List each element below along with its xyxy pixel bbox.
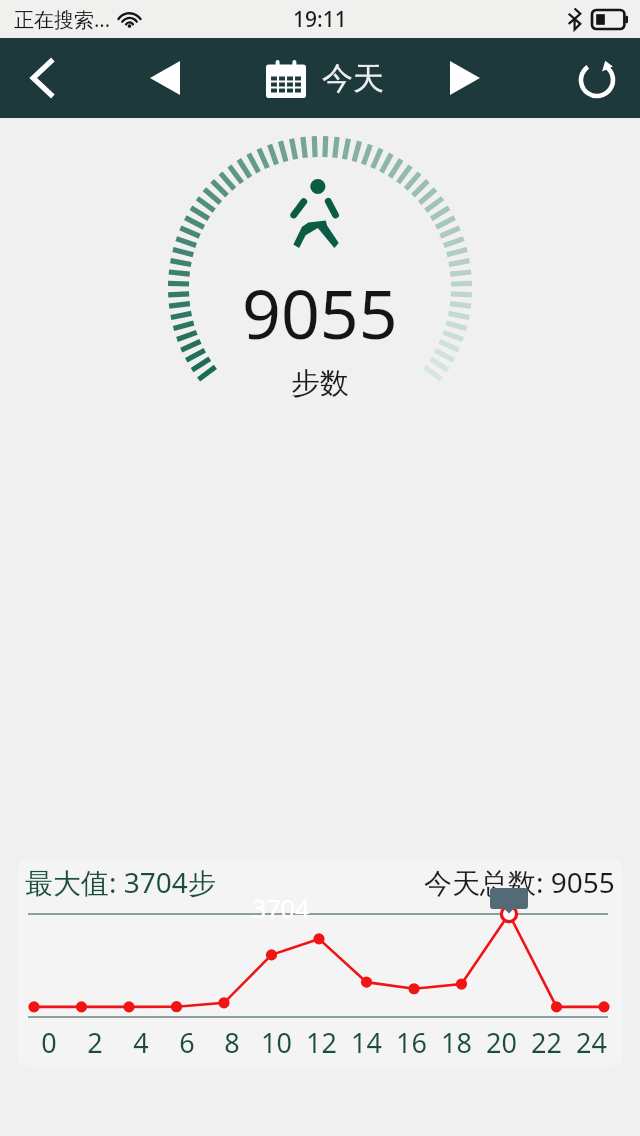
staticText: 24: [576, 1024, 607, 1061]
staticText: 0: [41, 1024, 57, 1061]
staticText: 今天总数: 9055: [424, 863, 615, 901]
staticText: 14: [351, 1024, 382, 1061]
staticText: 正在搜索...: [14, 6, 111, 33]
staticText: 6: [179, 1024, 195, 1061]
button[interactable]: Next day: [425, 38, 505, 118]
staticText: 9055: [242, 266, 398, 359]
button[interactable]: Back: [0, 38, 86, 118]
button[interactable]: 今天: [266, 59, 384, 98]
staticText: 16: [396, 1024, 427, 1061]
staticText: 步数: [291, 365, 349, 402]
staticText: 3704: [252, 891, 310, 925]
staticText: 4: [133, 1024, 149, 1061]
staticText: 2: [87, 1024, 103, 1061]
staticText: 今天: [322, 59, 384, 98]
staticText: 18: [441, 1024, 472, 1061]
staticText: 12: [306, 1024, 337, 1061]
staticText: 最大值: 3704步: [25, 863, 216, 901]
staticText: 10: [261, 1024, 292, 1061]
button[interactable]: Refresh: [554, 38, 640, 118]
button[interactable]: Previous day: [125, 38, 205, 118]
staticText: 19:11: [293, 5, 347, 34]
staticText: 22: [531, 1024, 562, 1061]
staticText: 8: [224, 1024, 240, 1061]
button[interactable]: 最大值: 3704步: [17, 859, 623, 1067]
staticText: 20: [486, 1024, 517, 1061]
